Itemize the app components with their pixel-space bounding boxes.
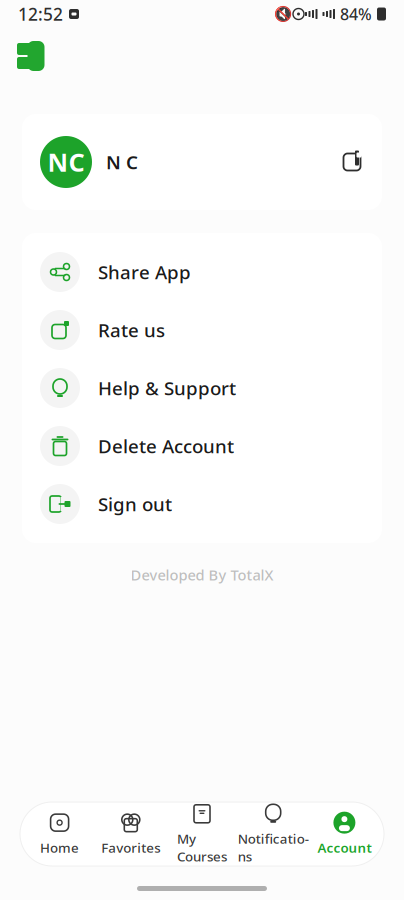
button[interactable]: NC bbox=[22, 114, 382, 210]
staticText: N C bbox=[106, 150, 138, 174]
staticText: 84% bbox=[340, 3, 372, 25]
button[interactable]: Account bbox=[309, 811, 380, 857]
button[interactable]: Share App bbox=[22, 243, 382, 301]
staticText: NC bbox=[47, 145, 84, 179]
staticText: Favorites bbox=[101, 839, 160, 856]
button[interactable]: Notifications bbox=[238, 811, 309, 857]
staticText: My Courses bbox=[177, 830, 227, 865]
button[interactable]: Favorites bbox=[95, 811, 166, 857]
staticText: Share App bbox=[98, 260, 191, 284]
staticText: Home bbox=[40, 839, 79, 856]
button[interactable]: My Courses bbox=[166, 811, 238, 857]
staticText: 🔇 bbox=[274, 6, 292, 22]
staticText: Delete Account bbox=[98, 434, 234, 458]
staticText: 12:52 bbox=[18, 2, 63, 25]
staticText: Rate us bbox=[98, 318, 165, 342]
staticText: Help & Support bbox=[98, 376, 236, 400]
button[interactable]: Rate us bbox=[22, 301, 382, 359]
staticText: Notifications bbox=[238, 830, 309, 865]
button[interactable]: Delete Account bbox=[22, 417, 382, 475]
button[interactable]: Help & Support bbox=[22, 359, 382, 417]
button[interactable]: Home bbox=[24, 811, 95, 857]
staticText: Developed By TotalX bbox=[130, 565, 273, 584]
staticText: Account bbox=[317, 839, 371, 856]
staticText: Sign out bbox=[98, 492, 172, 516]
button[interactable]: Sign out bbox=[22, 475, 382, 533]
